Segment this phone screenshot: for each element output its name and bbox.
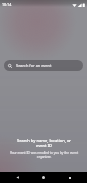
staticText: Your event ID was emailed to you by the … [9,151,79,159]
staticText: 10:14 [2,2,12,7]
staticText: Search by name, location, or event ID [16,138,72,148]
button[interactable]: Home [35,172,52,183]
button[interactable]: Back [9,172,26,183]
button[interactable]: Search for an event [4,60,83,71]
button[interactable]: Recent apps [61,172,78,183]
staticText: Search for an event [16,63,52,68]
